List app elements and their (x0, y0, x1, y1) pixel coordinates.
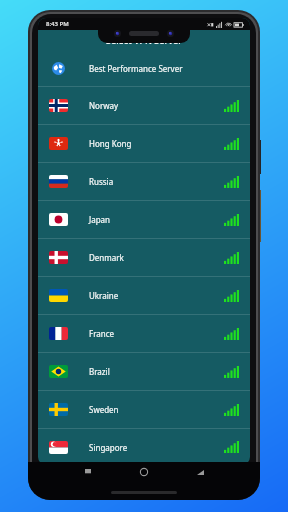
staticText: Hong Kong (89, 138, 132, 149)
staticText: Singapore (89, 442, 128, 453)
button[interactable]: Sweden (38, 391, 250, 429)
staticText: Russia (89, 176, 114, 187)
staticText: Brazil (89, 366, 110, 377)
staticText: France (89, 328, 115, 339)
button[interactable]: Japan (38, 201, 250, 239)
staticText: Norway (89, 100, 119, 111)
button[interactable]: Home (133, 462, 155, 482)
staticText: Sweden (89, 404, 119, 415)
button[interactable]: Singapore (38, 429, 250, 465)
button[interactable]: Ukraine (38, 277, 250, 315)
staticText: Select VPN Server (106, 34, 182, 46)
button[interactable]: Norway (38, 87, 250, 125)
button[interactable]: Denmark (38, 239, 250, 277)
staticText: Ukraine (89, 290, 119, 301)
staticText: 8:43 PM (46, 20, 69, 28)
staticText: Japan (89, 214, 111, 225)
button[interactable]: Recent apps (77, 462, 99, 482)
staticText: Denmark (89, 252, 124, 263)
button[interactable]: Brazil (38, 353, 250, 391)
button[interactable]: Best Performance Server (38, 50, 250, 87)
button[interactable]: Back (189, 462, 211, 482)
button[interactable]: Hong Kong (38, 125, 250, 163)
button[interactable]: France (38, 315, 250, 353)
staticText: Best Performance Server (89, 63, 183, 74)
button[interactable]: Russia (38, 163, 250, 201)
